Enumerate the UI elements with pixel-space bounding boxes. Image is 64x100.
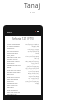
staticText: the earth being unformed and void, with … [7,50,21,68]
staticText: וַיִּקְרָא אֱלֹהִים לָאוֹר יוֹם וְלַחֹשׁ… [25,65,39,69]
staticText: Tanaj [24,1,41,10]
staticText: וַיַּעַשׂ אֱלֹהִים אֶת הָרָקִיעַ וַיַּבְ… [25,75,39,79]
staticText: God saw that the light was good and God … [7,76,21,88]
staticText: וְהָאָרֶץ הָיְתָה תֹהוּ וָבֹהוּ וְחֹשֶׁך… [25,48,39,54]
staticText: God called the light Day and the darknes… [7,89,21,95]
staticText: וַיֹּאמֶר אֱלֹהִים יְהִי רָקִיעַ בְּתוֹך… [25,70,39,74]
staticText: God said Let there be light and there wa… [7,69,21,75]
staticText: Sefaria 121 (FTV) [12,37,34,41]
staticText: בְּרֵאשִׁית בָּרָא אֱלֹהִים אֵת הַשָּׁמַ… [25,43,39,47]
staticText: 9:41 [7,30,12,33]
button[interactable]: Sefaria 121 (FTV) [5,36,41,42]
staticText: וַיִּקְרָא אֱלֹהִים לָרָקִיעַ שָׁמָיִם [25,80,39,84]
staticText: וַיַּרְא אֱלֹהִים אֶת הָאוֹר כִּי טוֹב ו… [25,60,39,64]
staticText: When God began to create heaven and eart… [7,43,21,49]
staticText: וַיֹּאמֶר אֱלֹהִים יְהִי אוֹר וַיְהִי או… [25,55,39,59]
staticText: v 1.0 [30,11,35,14]
